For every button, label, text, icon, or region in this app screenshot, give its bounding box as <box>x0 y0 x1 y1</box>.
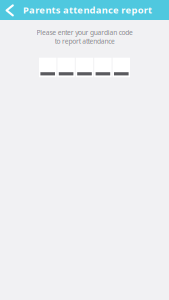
staticText: to report attendance <box>54 37 115 46</box>
staticText: Parents attendance report <box>23 4 152 16</box>
button[interactable]: Back <box>0 0 23 20</box>
staticText: Please enter your guardian code <box>36 28 133 37</box>
